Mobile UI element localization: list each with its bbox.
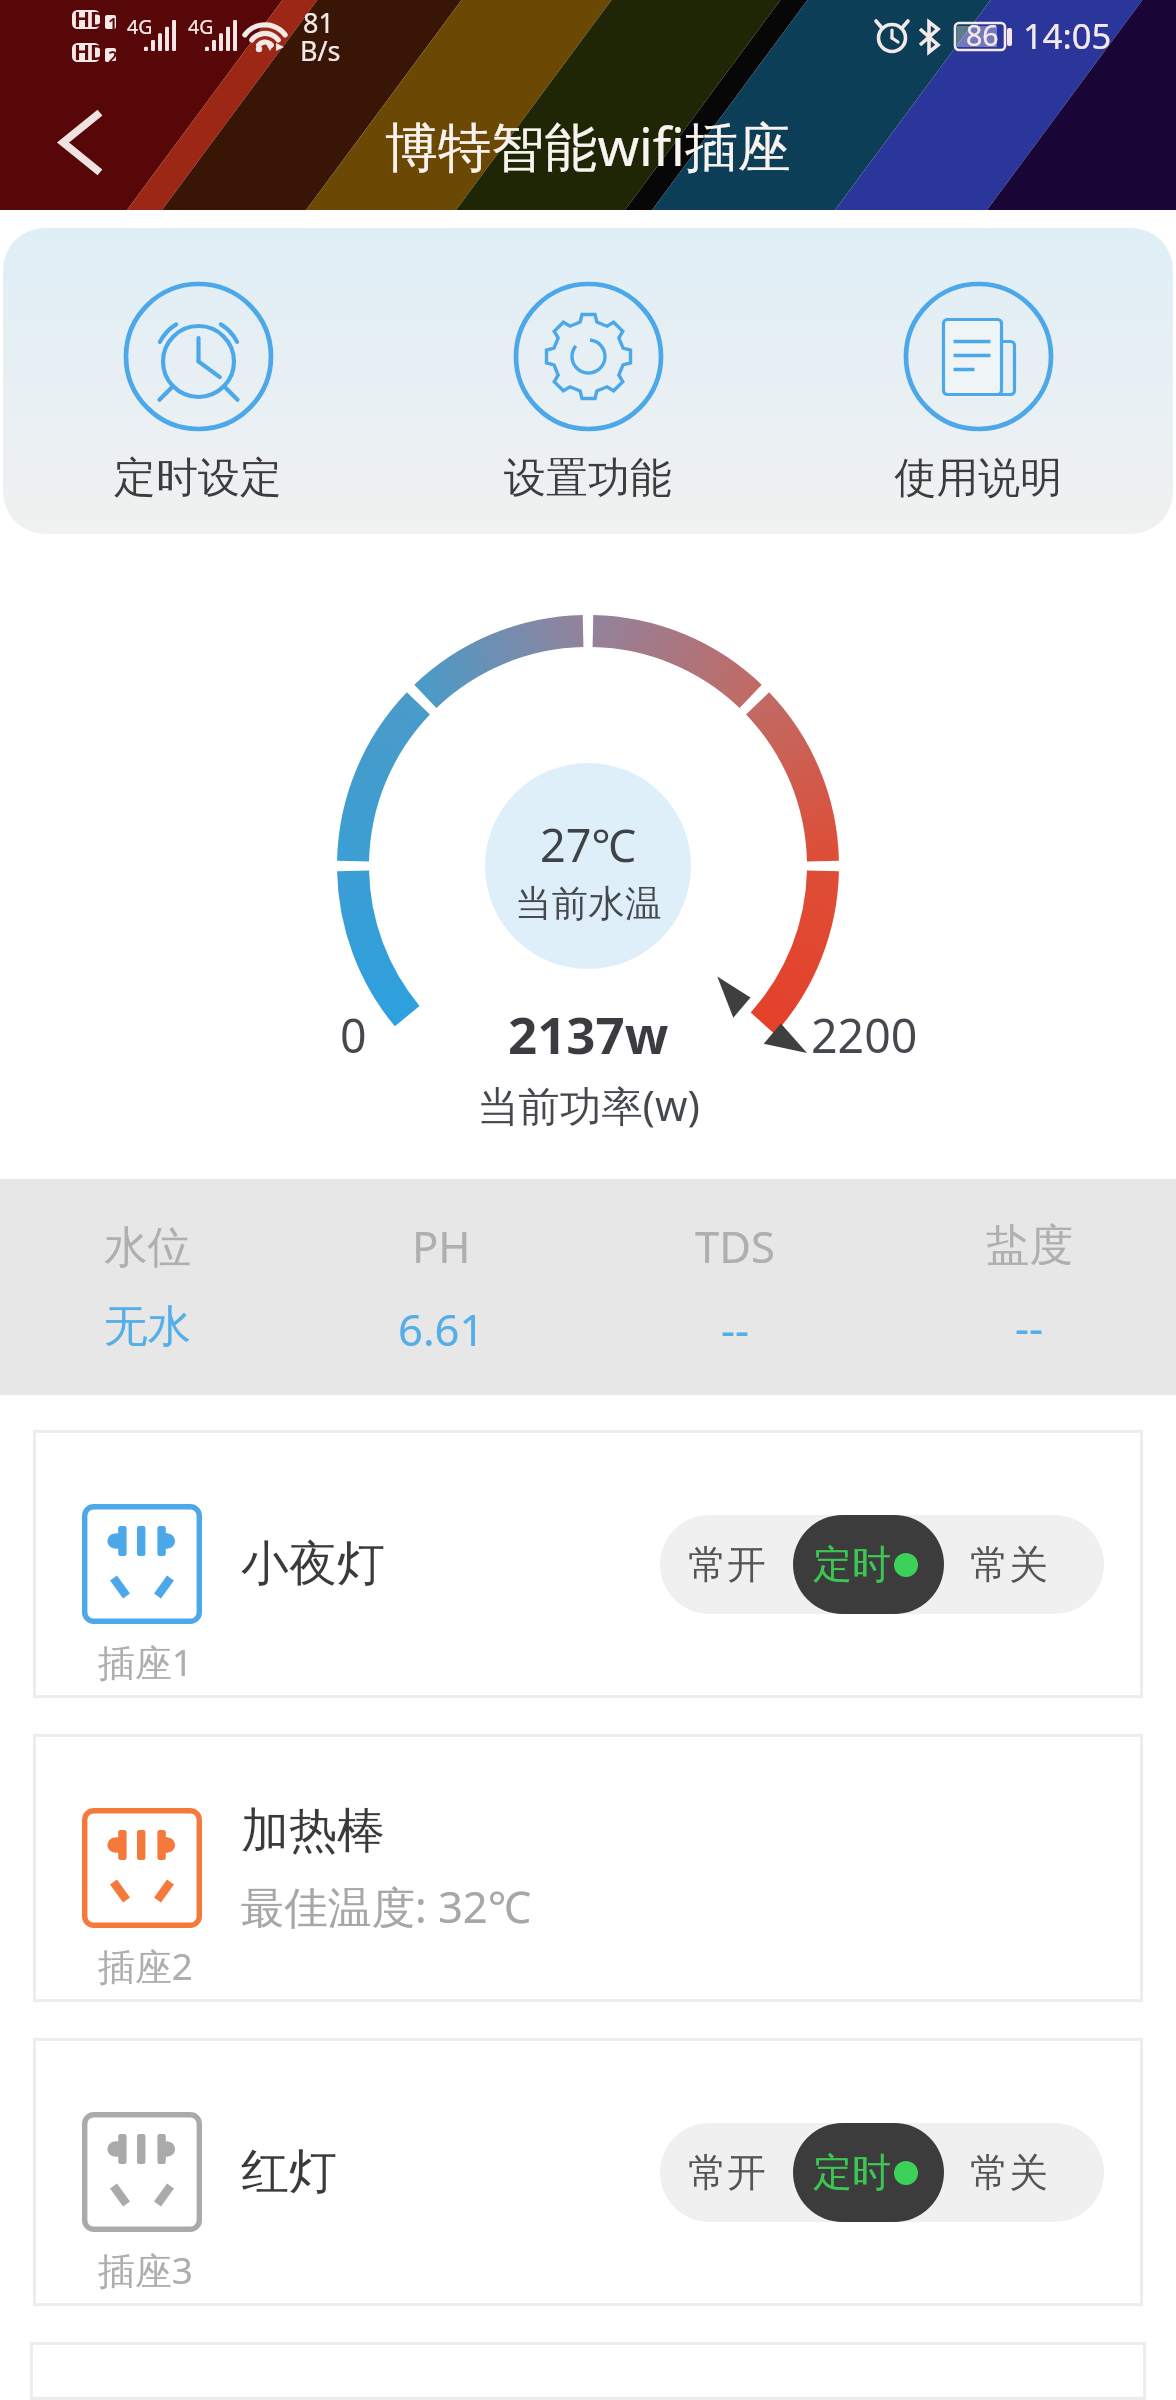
staticText: 红灯 [241, 2142, 337, 2202]
staticText: 插座2 [98, 1941, 193, 1991]
staticText: 博特智能wifi插座 [385, 109, 791, 182]
staticText: -- [1015, 1297, 1044, 1356]
button[interactable]: 定时设定 [3, 228, 393, 534]
staticText: 加热棒 [241, 1801, 385, 1861]
button[interactable]: Back [21, 75, 138, 210]
staticText: 定时设定 [114, 452, 282, 505]
staticText: 当前水温 [515, 881, 662, 927]
staticText: 常关 [970, 2148, 1048, 2197]
staticText: 常开 [688, 1540, 766, 1589]
staticText: HD [74, 38, 106, 67]
staticText: 4G [127, 13, 153, 40]
staticText: 水位 [104, 1220, 191, 1275]
button[interactable]: 设置功能 [393, 228, 783, 534]
staticText: 81 [303, 4, 334, 41]
staticText: 插座1 [98, 1637, 193, 1687]
staticText: 插座3 [98, 2245, 193, 2295]
staticText: 0 [340, 1003, 367, 1066]
button[interactable]: 常开 [660, 1515, 793, 1614]
staticText: 设置功能 [504, 452, 672, 505]
staticText: 27℃ [540, 814, 637, 875]
staticText: 无水 [104, 1299, 191, 1354]
staticText: 2137w [508, 999, 669, 1068]
staticText: 2 [108, 45, 118, 67]
staticText: HD [74, 5, 106, 34]
staticText: B/s [300, 32, 341, 69]
button[interactable]: 红灯 [33, 2038, 1143, 2306]
button[interactable]: 使用说明 [783, 228, 1173, 534]
staticText: 常关 [970, 1540, 1048, 1589]
button[interactable]: 加热棒 [33, 1734, 1143, 2002]
staticText: 2200 [811, 1003, 918, 1066]
staticText: 1 [108, 12, 118, 34]
button[interactable]: 小夜灯 [33, 1430, 1143, 1698]
staticText: 定时 [813, 2148, 891, 2197]
staticText: 小夜灯 [241, 1534, 385, 1594]
staticText: 14:05 [1023, 12, 1112, 59]
staticText: PH [412, 1216, 471, 1275]
staticText: 定时 [813, 1540, 891, 1589]
button[interactable]: 常开 [660, 2123, 793, 2222]
button[interactable]: 定时 [793, 1515, 944, 1614]
button[interactable]: 常关 [944, 2123, 1104, 2222]
staticText: 最佳温度: 32℃ [241, 1876, 532, 1935]
staticText: 86 [966, 16, 999, 55]
staticText: 4G [188, 13, 214, 40]
staticText: -- [721, 1299, 750, 1358]
staticText: 使用说明 [894, 452, 1062, 505]
staticText: 当前功率(w) [477, 1077, 700, 1134]
staticText: 盐度 [986, 1218, 1073, 1273]
staticText: 常开 [688, 2148, 766, 2197]
button[interactable]: 常关 [944, 1515, 1104, 1614]
button[interactable]: 定时 [793, 2123, 944, 2222]
staticText: TDS [695, 1216, 775, 1275]
staticText: 6.61 [398, 1299, 485, 1358]
